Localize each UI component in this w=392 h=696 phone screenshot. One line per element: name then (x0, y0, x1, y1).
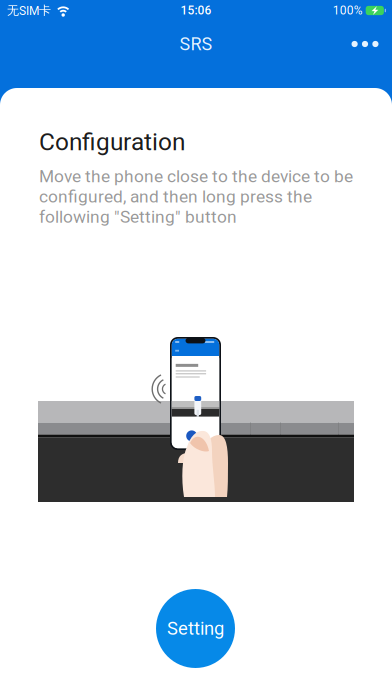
button[interactable]: More options (340, 22, 390, 66)
staticText: SRS (179, 33, 212, 55)
staticText: 无SIM卡 (7, 3, 51, 18)
staticText: Move the phone close to the device to be… (39, 166, 353, 227)
staticText: Setting (167, 618, 224, 639)
staticText: Configuration (39, 127, 185, 156)
staticText: 15:06 (180, 3, 211, 18)
staticText: 100% (333, 3, 363, 18)
button[interactable]: Setting (156, 589, 235, 668)
